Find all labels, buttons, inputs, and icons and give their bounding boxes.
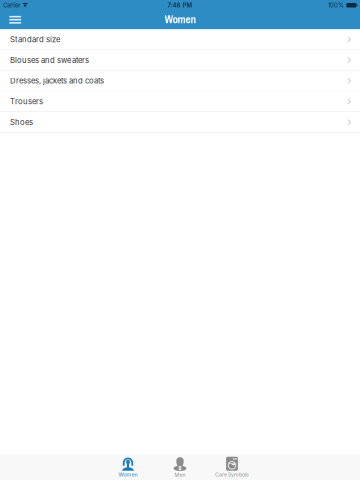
button[interactable]: Dresses, jackets and coats — [0, 71, 360, 91]
staticText: Carrier — [3, 2, 20, 9]
staticText: Trousers — [10, 97, 43, 106]
button[interactable]: Trousers — [0, 91, 360, 112]
button[interactable]: Standard size — [0, 29, 360, 50]
staticText: Care Symbols — [215, 471, 249, 478]
button[interactable]: Men — [160, 457, 200, 480]
button[interactable]: Shoes — [0, 112, 360, 133]
staticText: Dresses, jackets and coats — [10, 76, 104, 85]
button[interactable]: Menu — [0, 10, 32, 29]
button[interactable]: Blouses and sweaters — [0, 50, 360, 71]
staticText: Women — [164, 12, 195, 27]
staticText: Men — [174, 472, 185, 478]
button[interactable]: Care Symbols — [212, 457, 252, 480]
staticText: 7:48 PM — [167, 2, 192, 9]
staticText: 100% — [328, 2, 344, 9]
staticText: Standard size — [10, 35, 60, 44]
staticText: Women — [118, 472, 137, 478]
staticText: Shoes — [10, 117, 33, 127]
button[interactable]: Women — [108, 457, 148, 480]
staticText: Blouses and sweaters — [10, 55, 89, 65]
